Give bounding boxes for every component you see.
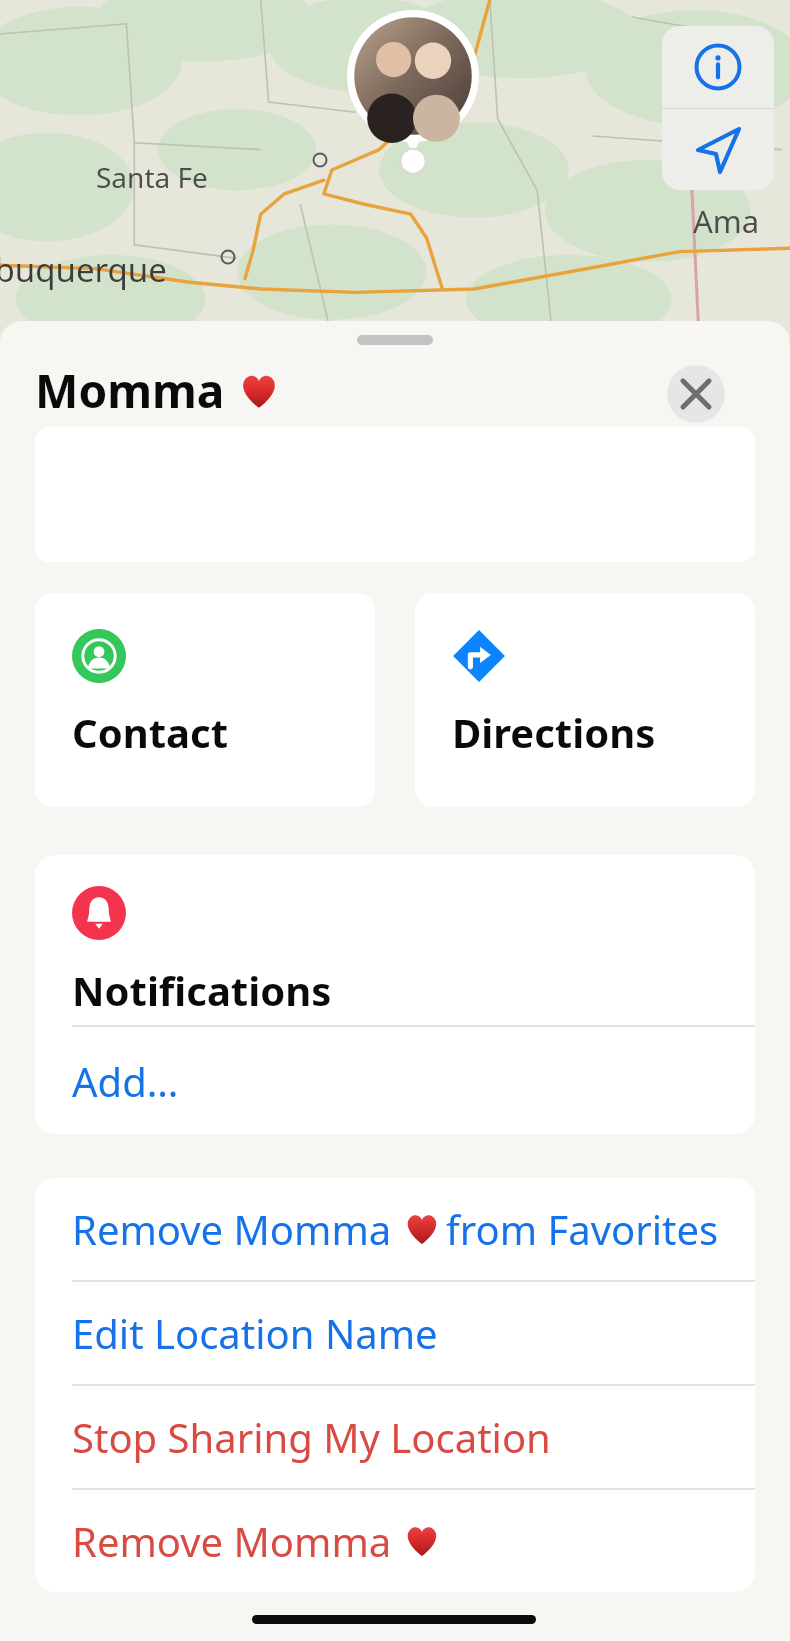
staticText: Stop Sharing My Location [72, 1410, 551, 1464]
button[interactable]: Map information [662, 26, 774, 108]
staticText: Remove Momma [72, 1202, 392, 1256]
staticText: Notifications [72, 963, 332, 1017]
button[interactable]: Close [667, 365, 725, 423]
staticText: from Favorites [446, 1202, 719, 1256]
button[interactable]: Notifications [35, 855, 755, 1025]
button[interactable]: Center on my location [662, 109, 774, 190]
button[interactable]: Momma location pin [347, 10, 479, 190]
staticText: Santa Fe [96, 158, 208, 196]
staticText: Contact [72, 705, 228, 759]
staticText: lbuquerque [0, 247, 167, 292]
staticText: Ama [693, 200, 760, 242]
button[interactable]: Edit Location Name [35, 1282, 755, 1384]
staticText: Edit Location Name [72, 1306, 438, 1360]
button[interactable]: Add… [35, 1027, 755, 1134]
button[interactable]: Directions [415, 593, 755, 807]
button[interactable]: Remove Momma [35, 1490, 755, 1592]
staticText: Momma [35, 359, 225, 422]
button[interactable]: Contact [35, 593, 375, 807]
button[interactable]: Remove Momma [35, 1178, 755, 1280]
button[interactable]: Stop Sharing My Location [35, 1386, 755, 1488]
staticText: Add… [72, 1054, 179, 1108]
staticText: Remove Momma [72, 1514, 392, 1568]
staticText: Directions [452, 705, 656, 759]
